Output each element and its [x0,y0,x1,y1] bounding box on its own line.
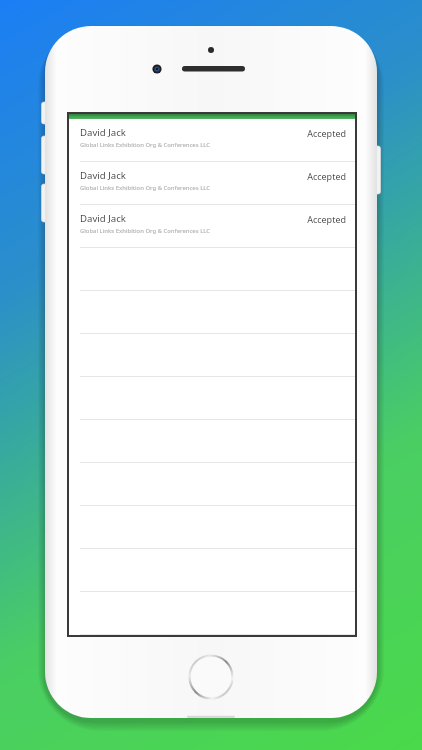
button[interactable]: David Jack [69,119,355,162]
button[interactable] [69,463,355,506]
staticText: Accepted [307,170,346,182]
staticText: David Jack [80,126,126,139]
button[interactable] [69,291,355,334]
button[interactable]: Home [188,654,234,700]
button[interactable]: David Jack [69,205,355,248]
staticText: Global Links Exhibition Org & Conference… [80,227,211,235]
button[interactable] [69,248,355,291]
staticText: Accepted [307,213,346,225]
staticText: Global Links Exhibition Org & Conference… [80,141,211,149]
button[interactable] [69,506,355,549]
staticText: Global Links Exhibition Org & Conference… [80,184,211,192]
button[interactable] [69,334,355,377]
button[interactable] [69,377,355,420]
button[interactable] [69,549,355,592]
staticText: David Jack [80,169,126,182]
staticText: David Jack [80,212,126,225]
button[interactable] [69,592,355,635]
button[interactable]: David Jack [69,162,355,205]
button[interactable] [69,420,355,463]
staticText: Accepted [307,127,346,139]
